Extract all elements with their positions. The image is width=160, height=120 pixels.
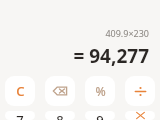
staticText: % — [95, 83, 106, 99]
staticText: 9 — [96, 111, 104, 120]
staticText: 7 — [16, 111, 24, 120]
button[interactable]: Backspace — [40, 74, 80, 108]
button[interactable]: Multiply — [120, 111, 160, 120]
staticText: 8 — [56, 111, 64, 120]
staticText: C — [16, 82, 25, 100]
button[interactable]: 7 — [0, 111, 40, 120]
button[interactable]: % — [80, 74, 120, 108]
button[interactable]: Divide — [120, 74, 160, 108]
staticText: 409.9×230 — [105, 27, 149, 39]
button[interactable]: 8 — [40, 111, 80, 120]
staticText: = 94,277 — [73, 43, 149, 69]
button[interactable]: 9 — [80, 111, 120, 120]
button[interactable]: C — [0, 74, 40, 108]
